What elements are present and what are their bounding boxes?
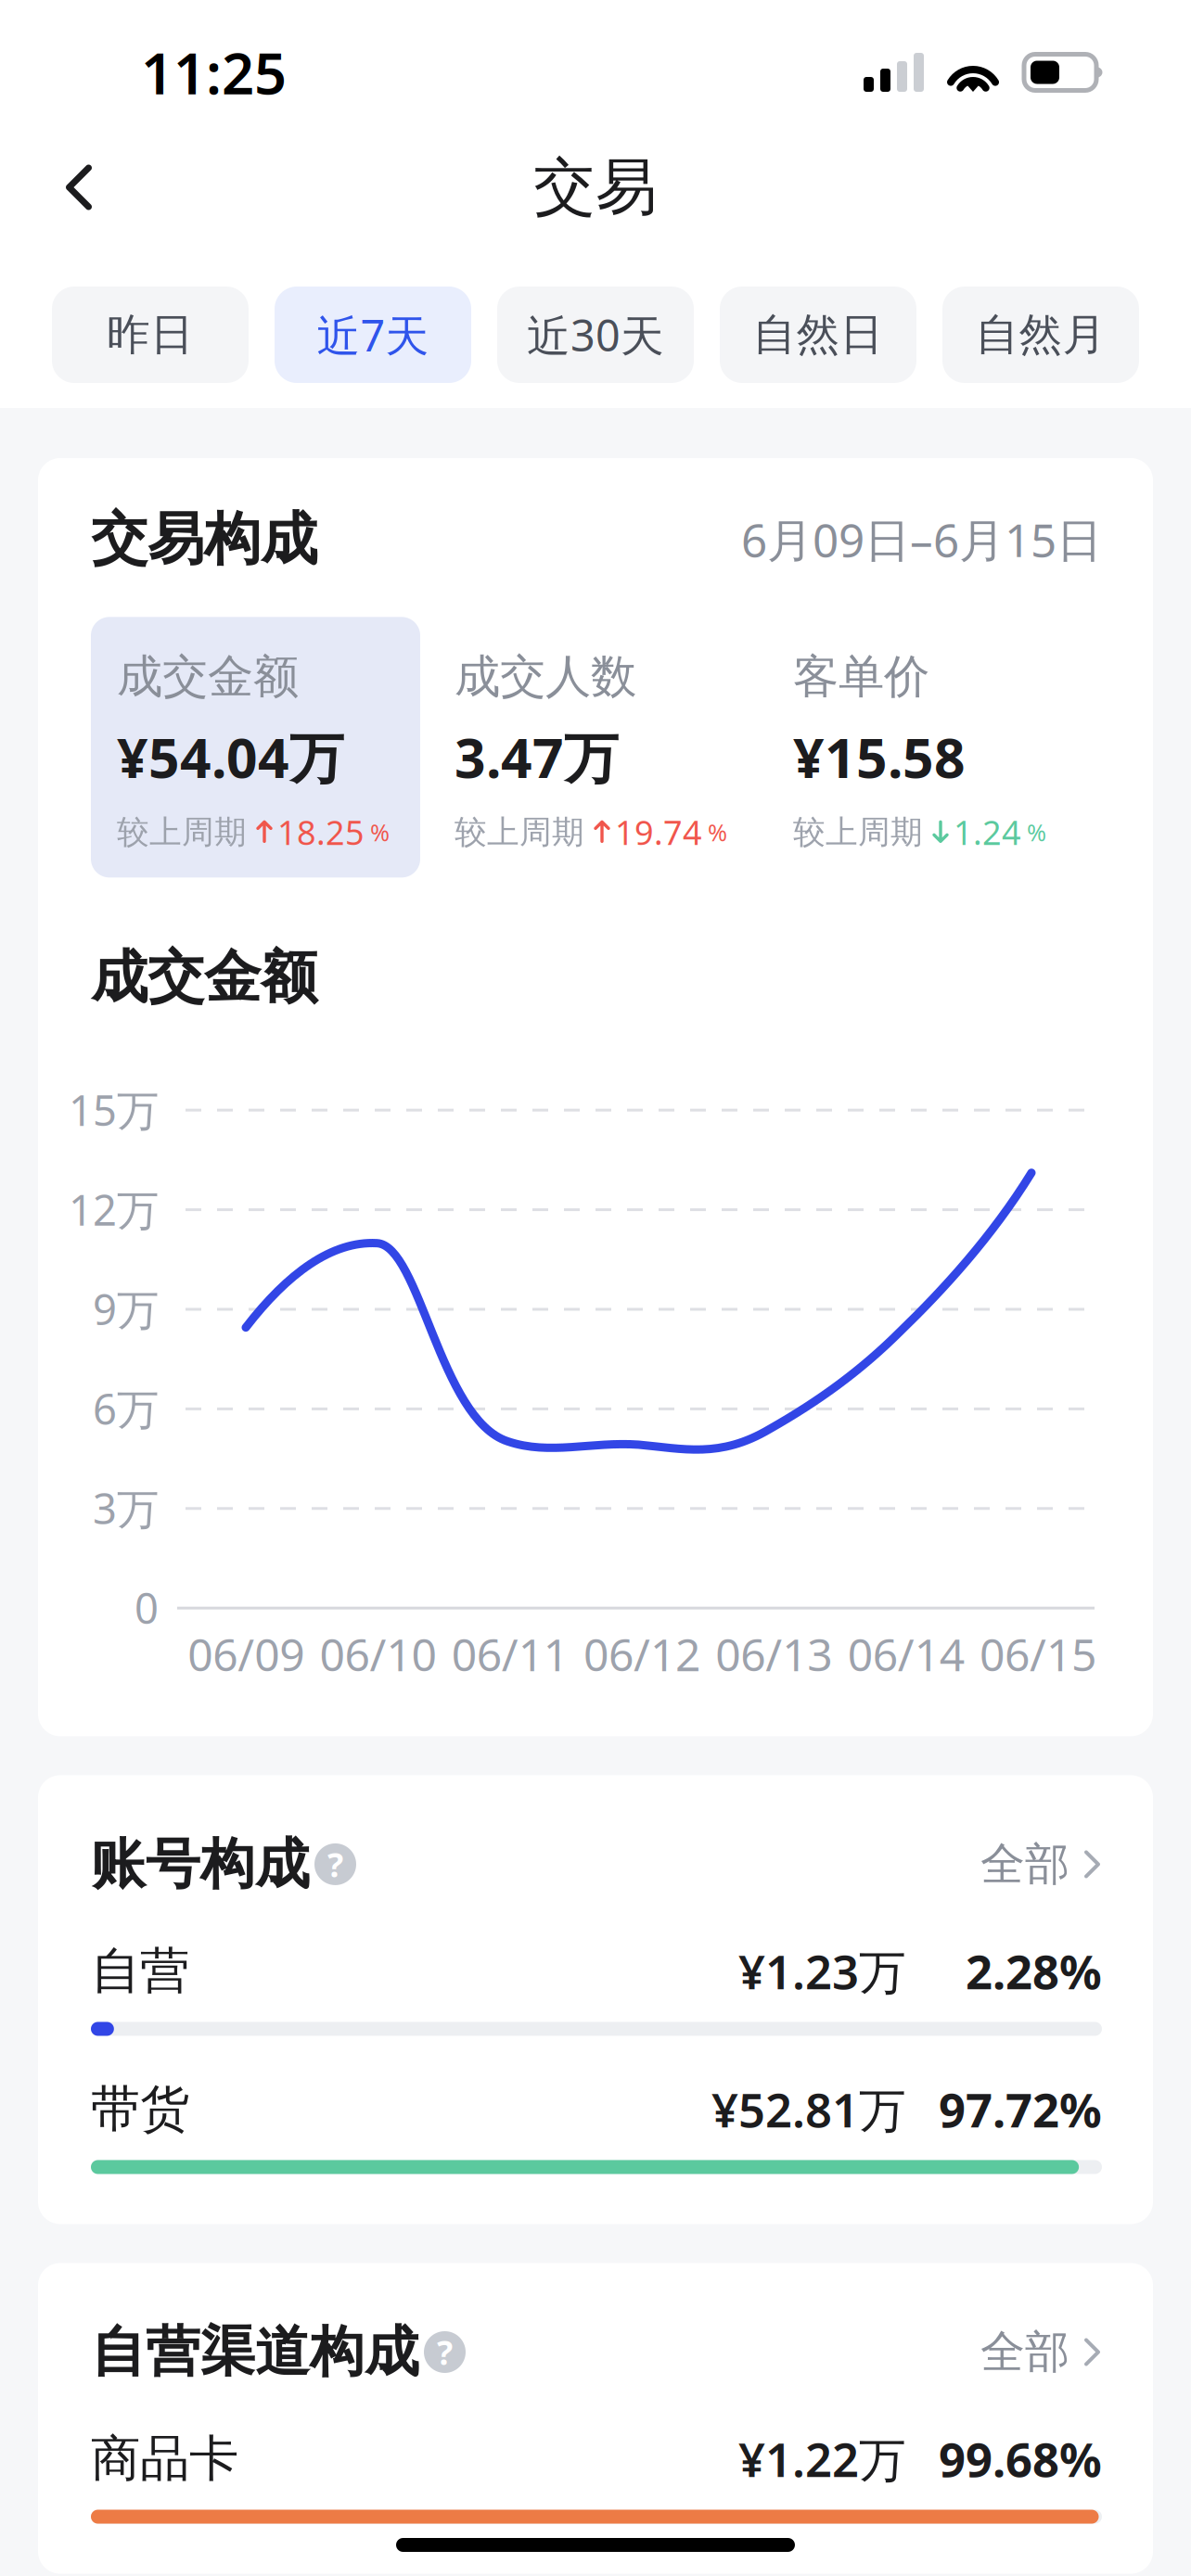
staticText: 成交人数 xyxy=(455,649,636,705)
button[interactable]: 自然日 xyxy=(720,287,916,383)
button[interactable]: 返回 xyxy=(28,145,130,230)
staticText: 自营 xyxy=(91,1941,189,2001)
staticText: 近7天 xyxy=(317,306,429,363)
staticText: 97.72% xyxy=(939,2078,1102,2140)
staticText: 3.47万 xyxy=(455,721,619,793)
staticText: 6万 xyxy=(93,1381,159,1436)
staticText: ¥15.58 xyxy=(793,721,966,793)
button[interactable]: 昨日 xyxy=(52,287,249,383)
staticText: 交易构成 xyxy=(91,504,317,574)
staticText: 自然月 xyxy=(975,308,1106,361)
staticText: 客单价 xyxy=(793,649,929,705)
staticText: 15万 xyxy=(69,1082,159,1138)
staticText: % xyxy=(370,816,390,848)
staticText: 12万 xyxy=(69,1181,159,1237)
button[interactable]: 近30天 xyxy=(497,287,694,383)
staticText: ¥1.23万 xyxy=(738,1940,906,2002)
staticText: 成交金额 xyxy=(91,942,317,1012)
staticText: 19.74 xyxy=(615,810,702,854)
staticText: 6月09日–6月15日 xyxy=(741,509,1102,570)
staticText: 成交金额 xyxy=(117,649,299,705)
staticText: 账号构成 xyxy=(91,1831,310,1898)
staticText: 较上周期 xyxy=(117,812,247,852)
staticText: 全部 xyxy=(980,2325,1069,2379)
staticText: 1.24 xyxy=(954,810,1021,854)
button[interactable]: 近7天 xyxy=(275,287,471,383)
staticText: 06/13 xyxy=(716,1624,832,1683)
staticText: 06/12 xyxy=(584,1624,700,1683)
staticText: ¥1.22万 xyxy=(738,2428,906,2490)
staticText: 99.68% xyxy=(939,2428,1102,2490)
staticText: 3万 xyxy=(93,1480,159,1536)
staticText: 06/09 xyxy=(188,1624,304,1683)
staticText: 06/14 xyxy=(847,1624,964,1683)
staticText: 带货 xyxy=(91,2079,189,2139)
staticText: ? xyxy=(327,1842,343,1886)
staticText: % xyxy=(708,816,727,848)
button[interactable]: 全部 xyxy=(980,2325,1102,2379)
staticText: 9万 xyxy=(93,1281,159,1337)
staticText: 商品卡 xyxy=(91,2428,238,2489)
staticText: 全部 xyxy=(980,1837,1069,1892)
staticText: ¥54.04万 xyxy=(117,721,344,793)
button[interactable]: 全部 xyxy=(980,1837,1102,1892)
staticText: 较上周期 xyxy=(793,812,923,852)
staticText: 0 xyxy=(134,1580,159,1636)
staticText: 昨日 xyxy=(107,308,194,361)
staticText: ? xyxy=(437,2330,453,2374)
staticText: ¥52.81万 xyxy=(711,2078,906,2140)
staticText: 06/11 xyxy=(452,1624,568,1683)
staticText: 06/10 xyxy=(320,1624,436,1683)
staticText: 自营渠道构成 xyxy=(91,2319,419,2386)
staticText: 较上周期 xyxy=(455,812,584,852)
staticText: 18.25 xyxy=(277,810,365,854)
button[interactable]: 自然月 xyxy=(942,287,1139,383)
staticText: 2.28% xyxy=(966,1940,1102,2002)
staticText: 交易 xyxy=(533,149,658,225)
staticText: 自然日 xyxy=(753,308,884,361)
staticText: % xyxy=(1027,816,1046,848)
staticText: 11:25 xyxy=(141,35,287,110)
staticText: 06/15 xyxy=(980,1624,1096,1683)
staticText: 近30天 xyxy=(527,306,664,363)
